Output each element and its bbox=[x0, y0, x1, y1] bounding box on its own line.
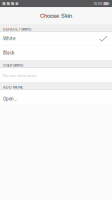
staticText: Open... bbox=[3, 96, 17, 102]
button[interactable]: Open... bbox=[0, 90, 112, 104]
staticText: 10:05 bbox=[93, 1, 102, 6]
button[interactable]: Black bbox=[0, 46, 112, 60]
staticText: Choose Skin bbox=[40, 12, 72, 19]
button[interactable]: White bbox=[0, 32, 112, 46]
staticText: ADD MORE bbox=[3, 85, 23, 89]
staticText: DEFAULT SKINS bbox=[3, 27, 31, 31]
staticText: No user skins found bbox=[3, 73, 36, 78]
staticText: Black bbox=[3, 50, 14, 56]
button[interactable]: No user skins found bbox=[0, 68, 112, 82]
staticText: USER SKINS bbox=[3, 63, 23, 67]
staticText: White bbox=[3, 36, 15, 41]
